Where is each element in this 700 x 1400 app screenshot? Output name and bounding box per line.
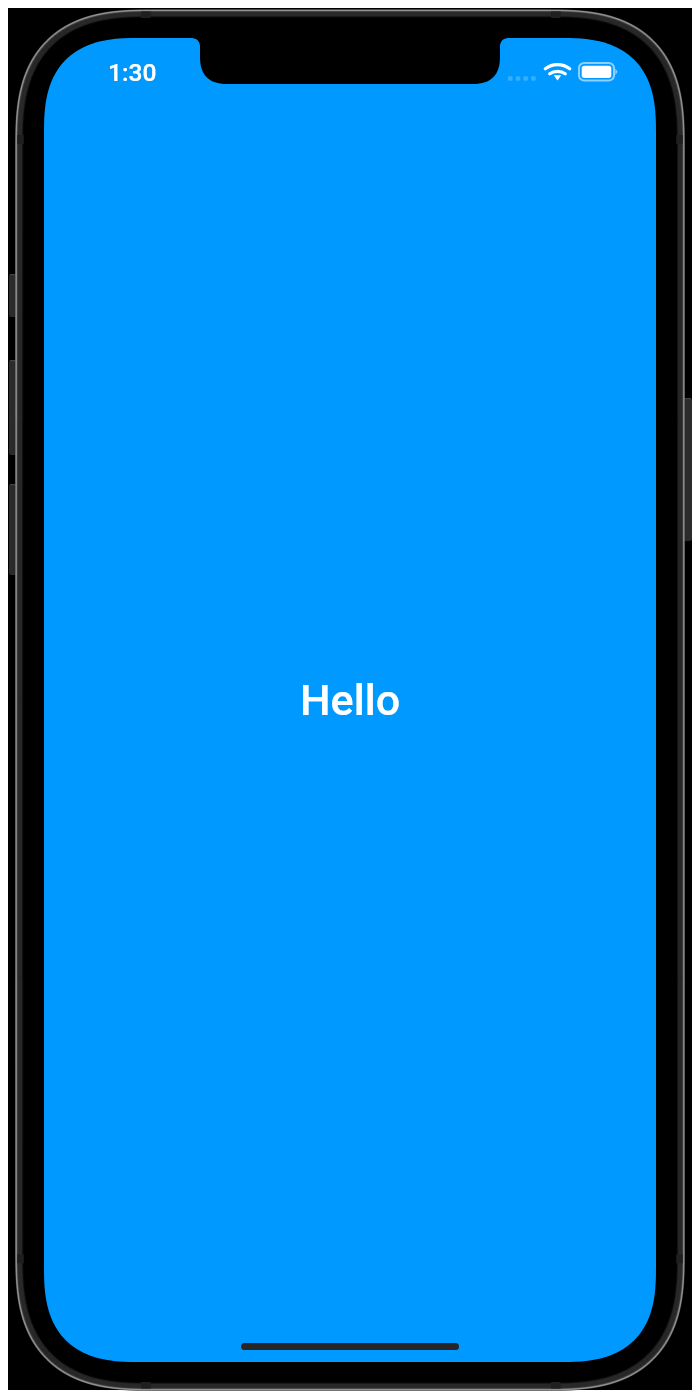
button[interactable]: Hello (300, 675, 401, 725)
other: Home indicator (241, 1343, 459, 1350)
staticText: 1:30 (108, 58, 157, 87)
